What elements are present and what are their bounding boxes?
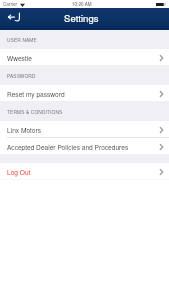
staticText: Linx Motors — [7, 125, 41, 134]
staticText: PASSWORD — [7, 72, 36, 79]
staticText: Settings — [64, 11, 99, 25]
staticText: Log Out — [7, 167, 31, 176]
button[interactable]: Log Out — [0, 163, 169, 179]
staticText: TERMS & CONDITIONS — [7, 108, 63, 115]
staticText: Carrier — [3, 1, 18, 8]
button[interactable]: Accepted Dealer Policies and Procedures — [0, 138, 169, 154]
staticText: USER NAME — [7, 36, 37, 43]
button[interactable]: Back — [6, 7, 22, 27]
staticText: 10:26 AM — [72, 1, 92, 8]
button[interactable]: Linx Motors — [0, 121, 169, 138]
button[interactable]: Reset my password — [0, 85, 169, 101]
staticText: Wwestie — [7, 53, 32, 62]
staticText: Accepted Dealer Policies and Procedures — [7, 142, 129, 151]
staticText: Reset my password — [7, 89, 65, 98]
button[interactable]: Wwestie — [0, 49, 169, 65]
